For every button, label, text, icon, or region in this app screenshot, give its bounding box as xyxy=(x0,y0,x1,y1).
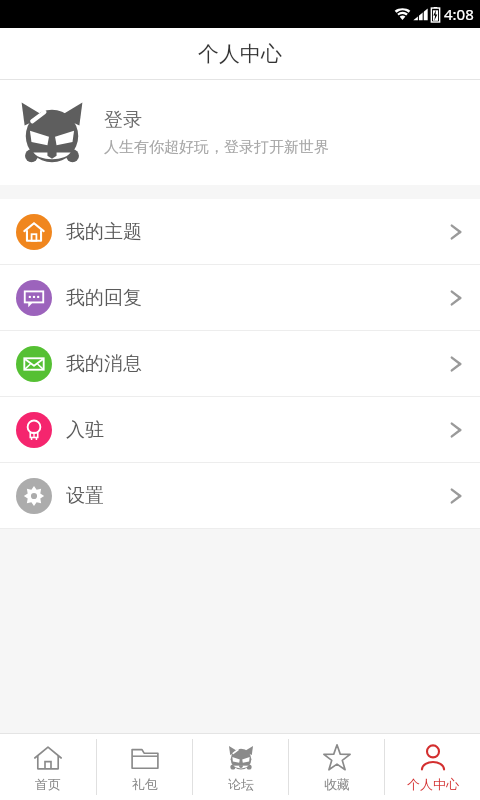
button[interactable]: 我的主题 xyxy=(0,199,480,264)
button[interactable]: 我的消息 xyxy=(0,331,480,396)
staticText: 人生有你超好玩，登录打开新世界 xyxy=(104,138,329,157)
button[interactable]: 个人中心 xyxy=(385,734,480,800)
staticText: 我的消息 xyxy=(66,352,142,376)
staticText: 设置 xyxy=(66,484,104,508)
staticText: 入驻 xyxy=(66,418,104,442)
staticText: 礼包 xyxy=(132,776,158,792)
button[interactable]: 设置 xyxy=(0,463,480,528)
button[interactable]: 礼包 xyxy=(97,734,192,800)
staticText: 个人中心 xyxy=(198,41,282,67)
staticText: 我的回复 xyxy=(66,286,142,310)
staticText: 首页 xyxy=(35,776,61,792)
staticText: 4:08 xyxy=(444,4,474,24)
staticText: 论坛 xyxy=(228,776,254,792)
staticText: 我的主题 xyxy=(66,220,142,244)
button[interactable]: 入驻 xyxy=(0,397,480,462)
staticText: 个人中心 xyxy=(407,776,459,792)
staticText: 收藏 xyxy=(324,776,350,792)
staticText: 登录 xyxy=(104,108,142,132)
button[interactable]: 论坛 xyxy=(193,734,288,800)
button[interactable]: 收藏 xyxy=(289,734,384,800)
button[interactable]: 登录 xyxy=(0,80,480,185)
button[interactable]: 首页 xyxy=(0,734,96,800)
button[interactable]: 我的回复 xyxy=(0,265,480,330)
